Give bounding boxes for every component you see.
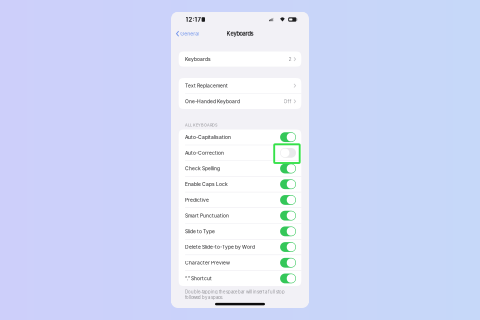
button[interactable]: Auto-Capitalisation bbox=[179, 129, 301, 145]
staticText: followed by a space. bbox=[185, 295, 223, 300]
staticText: One-Handed Keyboard bbox=[185, 98, 240, 104]
button[interactable]: Character Preview bbox=[179, 255, 301, 270]
staticText: Off bbox=[284, 98, 292, 104]
button[interactable]: “.” Shortcut bbox=[179, 271, 301, 286]
button[interactable]: Check Spelling bbox=[179, 161, 301, 176]
staticText: Delete Slide-to-Type by Word bbox=[185, 244, 255, 250]
button[interactable]: Auto-Correction bbox=[179, 145, 301, 160]
button[interactable]: Keyboards bbox=[179, 51, 301, 67]
button[interactable]: Slide to Type bbox=[179, 224, 301, 239]
staticText: Double-tapping the space bar will insert… bbox=[185, 289, 285, 294]
staticText: Smart Punctuation bbox=[185, 213, 229, 219]
staticText: Keyboards bbox=[226, 30, 253, 37]
staticText: Auto-Capitalisation bbox=[185, 134, 231, 140]
button[interactable]: Enable Caps Lock bbox=[179, 177, 301, 192]
staticText: Character Preview bbox=[185, 260, 230, 266]
staticText: Keyboards bbox=[185, 56, 211, 62]
button[interactable]: One-Handed Keyboard bbox=[179, 94, 301, 109]
staticText: Predictive bbox=[185, 197, 209, 203]
staticText: Auto-Correction bbox=[185, 150, 224, 156]
button[interactable]: Smart Punctuation bbox=[179, 208, 301, 223]
staticText: General bbox=[180, 31, 199, 37]
staticText: 12:17 bbox=[186, 16, 201, 23]
button[interactable]: Predictive bbox=[179, 192, 301, 208]
staticText: 2 bbox=[289, 56, 292, 62]
button[interactable]: Text Replacement bbox=[179, 78, 301, 93]
button[interactable]: Delete Slide-to-Type by Word bbox=[179, 239, 301, 255]
staticText: Slide to Type bbox=[185, 228, 215, 234]
button[interactable]: General bbox=[171, 28, 199, 39]
staticText: Check Spelling bbox=[185, 166, 220, 172]
staticText: “.” Shortcut bbox=[185, 275, 212, 281]
staticText: Enable Caps Lock bbox=[185, 181, 228, 187]
staticText: Text Replacement bbox=[185, 83, 228, 89]
staticText: ALL KEYBOARDS bbox=[185, 123, 217, 127]
